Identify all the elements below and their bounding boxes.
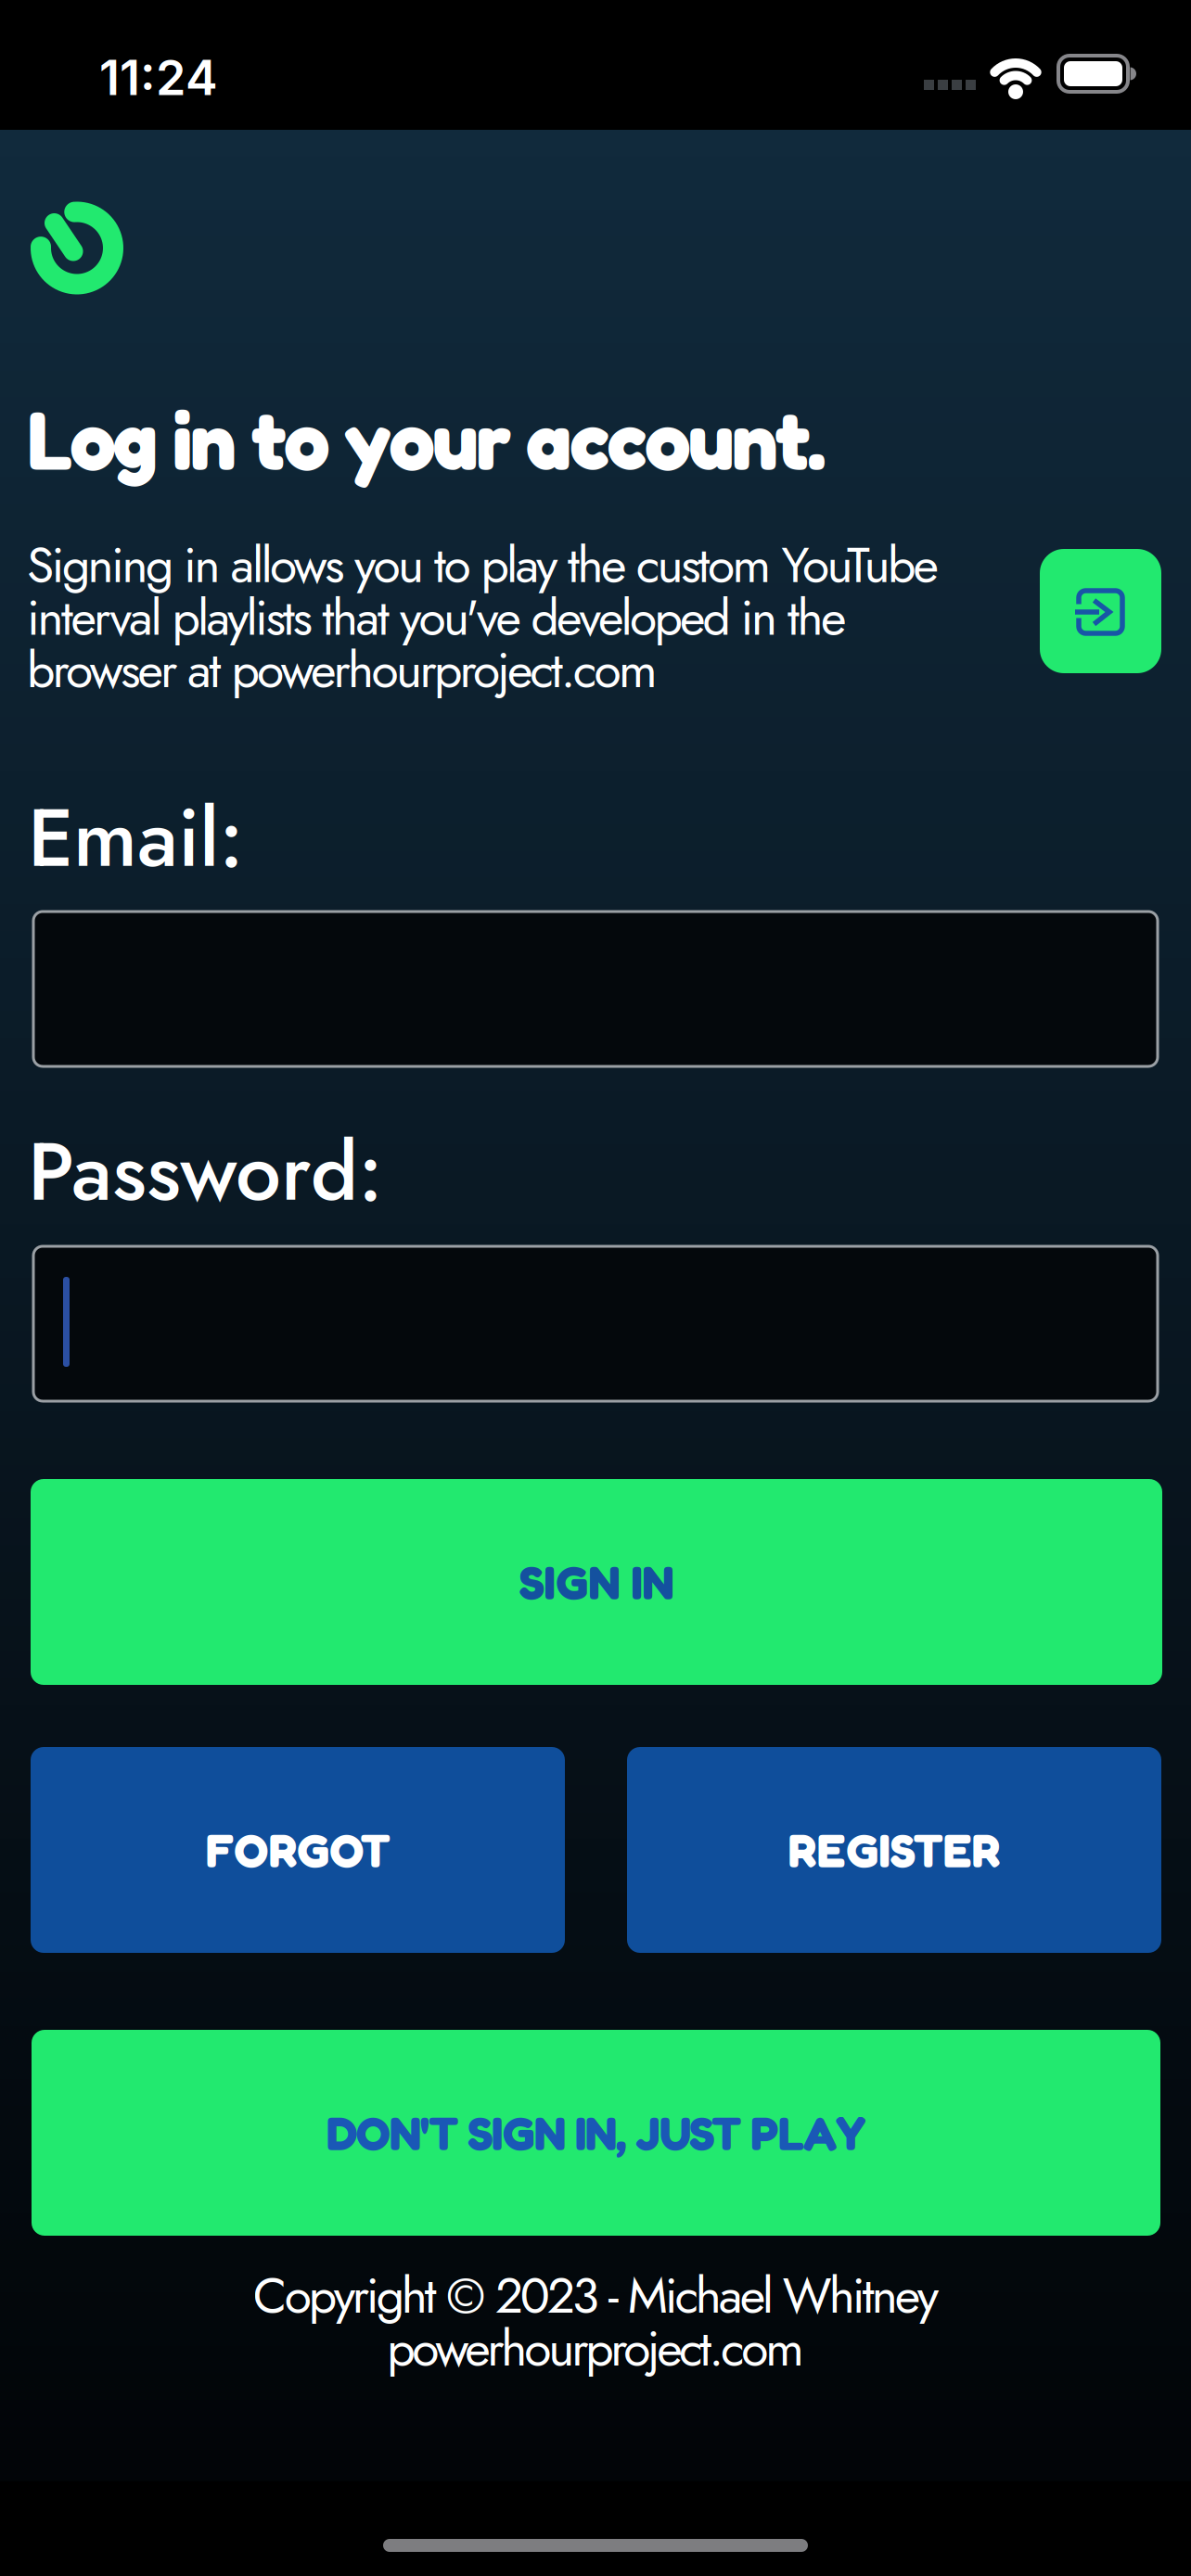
staticText: 11:24	[99, 48, 218, 107]
staticText: Password:	[28, 1114, 383, 1230]
staticText: Copyright © 2023 - Michael Whitney power…	[253, 2269, 938, 2375]
staticText: FORGOT	[205, 1821, 390, 1878]
staticText: SIGN IN	[519, 1553, 674, 1610]
staticText: Email:	[28, 780, 244, 896]
staticText: Log in to your account.	[26, 389, 825, 488]
staticText: Signing in allows you to play the custom…	[27, 539, 938, 696]
staticText: DON'T SIGN IN, JUST PLAY	[327, 2104, 865, 2161]
staticText: REGISTER	[788, 1821, 1000, 1878]
